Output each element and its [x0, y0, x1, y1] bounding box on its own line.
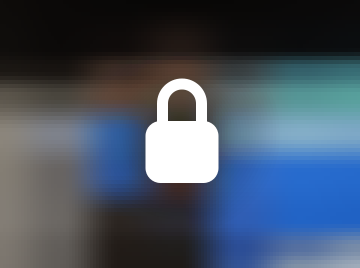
- button[interactable]: Locked photo: [0, 0, 360, 268]
